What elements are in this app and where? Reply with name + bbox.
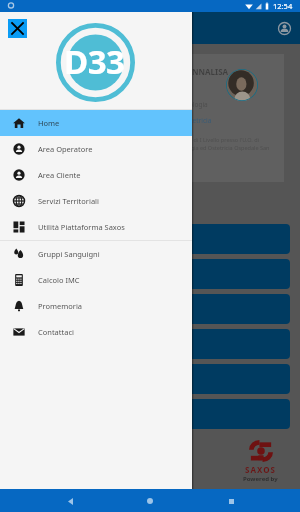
staticText: D33 bbox=[64, 39, 125, 84]
button[interactable]: Promemoria bbox=[0, 293, 192, 319]
staticText: SAXOS bbox=[245, 464, 276, 475]
button[interactable]: Utilità Piattaforma Saxos bbox=[0, 214, 192, 240]
button[interactable]: Area Operatore bbox=[0, 136, 192, 162]
button[interactable]: Home bbox=[0, 110, 192, 136]
button[interactable] bbox=[10, 294, 290, 324]
staticText: Area Operatore bbox=[38, 144, 93, 154]
staticText: Home bbox=[38, 118, 60, 128]
button[interactable]: Area Cliente bbox=[0, 162, 192, 188]
staticText: Ostetricia bbox=[182, 116, 212, 125]
button[interactable] bbox=[10, 224, 290, 254]
staticText: Gruppi Sanguigni bbox=[38, 249, 100, 259]
staticText: Area Cliente bbox=[38, 170, 81, 180]
button[interactable]: Close navigation drawer bbox=[8, 19, 27, 38]
button[interactable]: Home bbox=[139, 490, 161, 512]
button[interactable]: Account bbox=[275, 19, 293, 37]
button[interactable]: Gruppi Sanguigni bbox=[0, 241, 192, 267]
staticText: Calcolo IMC bbox=[38, 275, 80, 285]
staticText: Biologia bbox=[183, 100, 208, 109]
button[interactable] bbox=[10, 259, 290, 289]
staticText: Contattaci bbox=[38, 327, 74, 337]
button[interactable]: Recent apps bbox=[220, 490, 242, 512]
staticText: 12:54 bbox=[273, 1, 293, 11]
staticText: Dirigente di I Livello presso l'U.O. di … bbox=[168, 136, 283, 160]
staticText: Utilità Piattaforma Saxos bbox=[38, 222, 125, 232]
button[interactable]: Servizi Territoriali bbox=[0, 188, 192, 214]
button[interactable] bbox=[10, 329, 290, 359]
staticText: Promemoria bbox=[38, 301, 83, 311]
button[interactable] bbox=[10, 399, 290, 429]
staticText: Servizi Territoriali bbox=[38, 196, 99, 206]
button[interactable]: Back bbox=[59, 490, 81, 512]
button[interactable] bbox=[10, 364, 290, 394]
button[interactable]: Calcolo IMC bbox=[0, 267, 192, 293]
staticText: Powered by bbox=[243, 475, 278, 483]
staticText: DOTT.SSA ANNALISA bbox=[147, 66, 229, 77]
button[interactable]: Contattaci bbox=[0, 319, 192, 345]
